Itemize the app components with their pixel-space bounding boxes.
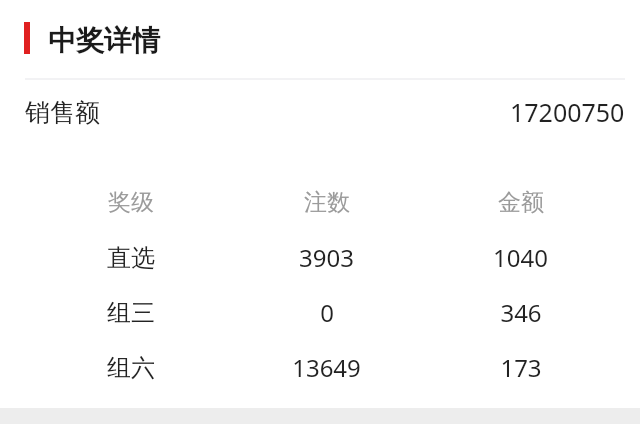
button[interactable]: 组三 [0,285,640,340]
staticText: 346 [500,296,542,329]
staticText: 1040 [493,241,548,274]
staticText: 13649 [292,351,361,384]
staticText: 组六 [107,353,155,383]
button[interactable]: 销售额 [25,80,625,144]
staticText: 173 [500,351,542,384]
staticText: 奖级 [108,188,154,217]
staticText: 销售额 [25,97,100,128]
button[interactable]: 直选 [0,230,640,285]
staticText: 3903 [299,241,354,274]
staticText: 17200750 [510,95,625,129]
button[interactable]: 奖级 [0,175,640,230]
staticText: 直选 [107,243,155,273]
staticText: 中奖详情 [48,23,160,58]
staticText: 组三 [107,298,155,328]
button[interactable]: 中奖详情 [0,0,640,80]
staticText: 注数 [304,188,350,217]
button[interactable]: 组六 [0,340,640,395]
staticText: 金额 [498,188,544,217]
staticText: 0 [320,296,334,329]
